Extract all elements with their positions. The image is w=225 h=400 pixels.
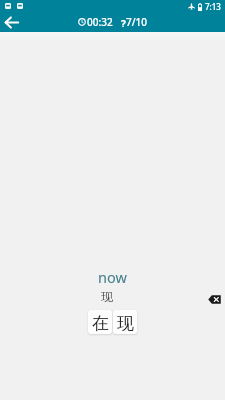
staticText: now (98, 267, 127, 287)
staticText: ? (121, 17, 126, 27)
staticText: 7:13 (205, 1, 221, 12)
button[interactable]: 在 (88, 310, 112, 334)
button[interactable]: 现 (113, 310, 137, 334)
staticText: 在 (92, 313, 109, 334)
staticText: 现 (117, 313, 134, 334)
staticText: 7/10 (126, 15, 148, 29)
staticText: 现 (101, 289, 113, 304)
staticText: 00:32 (87, 15, 113, 29)
button[interactable]: Back (1, 12, 21, 32)
button[interactable]: Backspace (203, 289, 225, 309)
